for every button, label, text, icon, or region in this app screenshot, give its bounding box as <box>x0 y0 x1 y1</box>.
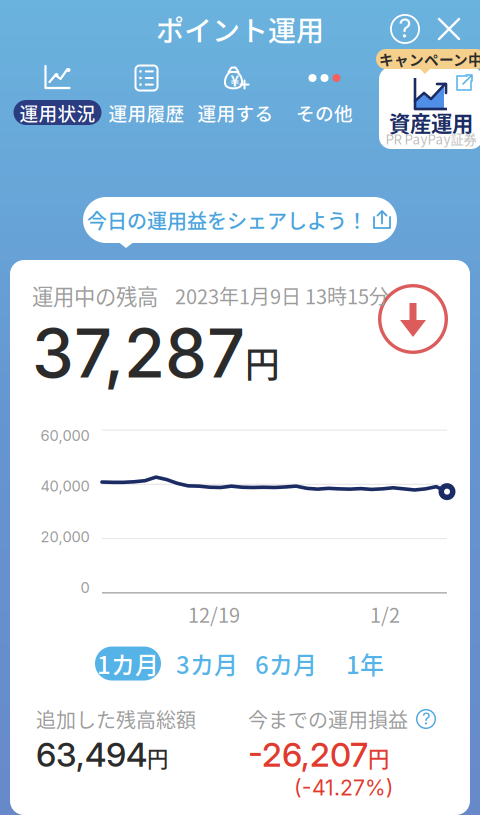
staticText: 63,494 <box>36 734 147 775</box>
staticText: 円 <box>245 337 280 387</box>
staticText: 運用履歴 <box>108 99 184 126</box>
button[interactable]: その他 <box>280 64 369 125</box>
staticText: 円 <box>147 742 168 773</box>
button[interactable]: ¥ <box>191 64 280 125</box>
staticText: 60,000 <box>40 427 89 444</box>
staticText: 6カ月 <box>255 646 317 681</box>
button[interactable]: 今日の運用益をシェアしよう！ <box>83 197 397 249</box>
button[interactable]: 閉じる <box>420 16 462 42</box>
staticText: PR PayPay証券 <box>385 129 476 148</box>
staticText: 今日の運用益をシェアしよう！ <box>87 205 367 234</box>
staticText: 運用中の残高 <box>32 280 158 311</box>
button[interactable]: 引き出す <box>378 284 448 354</box>
staticText: (-41.27%) <box>294 775 394 801</box>
staticText: ? <box>422 708 430 728</box>
button[interactable]: 運用状況 <box>13 64 102 125</box>
button[interactable]: ヘルプ <box>390 14 420 44</box>
staticText: 1/2 <box>370 600 400 629</box>
staticText: 今までの運用損益 <box>248 704 408 733</box>
button[interactable]: 運用履歴 <box>102 64 191 125</box>
staticText: ? <box>398 13 411 43</box>
staticText: 1年 <box>346 646 384 681</box>
staticText: その他 <box>296 99 353 126</box>
staticText: 運用状況 <box>19 99 95 126</box>
button[interactable]: 1年 <box>332 646 398 680</box>
staticText: 円 <box>368 742 389 773</box>
staticText: 3カ月 <box>176 646 238 681</box>
staticText: 運用する <box>197 99 273 126</box>
staticText: -26,207 <box>248 734 368 775</box>
staticText: 40,000 <box>40 477 89 495</box>
button[interactable]: 資産運用 PR PayPay証券 <box>376 49 480 150</box>
button[interactable]: 3カ月 <box>174 646 240 680</box>
staticText: キャンペーン中 <box>379 48 480 70</box>
staticText: ポイント運用 <box>156 9 324 49</box>
staticText: 20,000 <box>40 528 89 546</box>
staticText: 追加した残高総額 <box>36 704 196 733</box>
staticText: 資産運用 <box>389 107 473 138</box>
staticText: 0 <box>80 579 89 596</box>
staticText: ¥ <box>230 69 239 91</box>
staticText: 37,287 <box>32 313 245 394</box>
staticText: 1カ月 <box>97 646 159 681</box>
button[interactable]: 6カ月 <box>253 646 319 680</box>
button[interactable]: 1カ月 <box>95 646 161 680</box>
button[interactable]: 運用損益とは <box>416 709 436 729</box>
staticText: 12/19 <box>188 600 240 629</box>
staticText: 2023年1月9日 13時15分 <box>175 281 389 310</box>
